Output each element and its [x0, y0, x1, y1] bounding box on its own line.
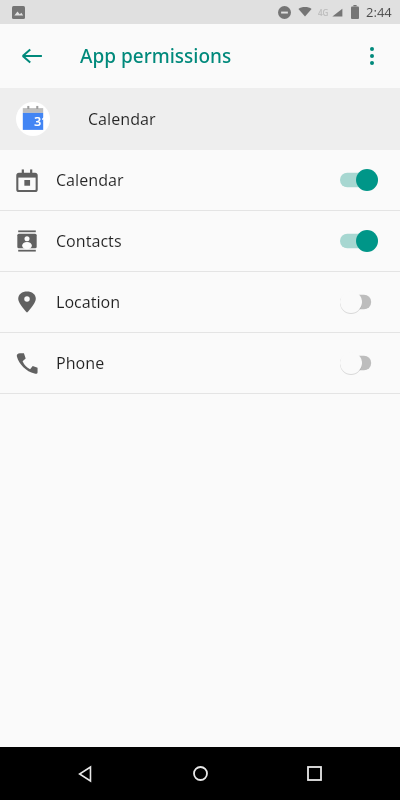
staticText: 4G [318, 7, 329, 18]
button[interactable]: Location permission toggle [336, 284, 384, 320]
button[interactable]: Contacts [0, 211, 400, 271]
button[interactable]: 31 [0, 88, 400, 150]
button[interactable]: Home [172, 747, 228, 800]
staticText: Location [56, 291, 336, 313]
staticText: Phone [56, 352, 336, 374]
staticText: Contacts [56, 230, 336, 252]
staticText: Calendar [88, 108, 156, 130]
button[interactable]: Phone permission toggle [336, 345, 384, 381]
button[interactable]: Recent apps [286, 747, 342, 800]
staticText: 31 [34, 113, 48, 129]
button[interactable]: More options [348, 32, 396, 80]
button[interactable]: Back [58, 747, 114, 800]
button[interactable]: Calendar [0, 150, 400, 210]
staticText: 2:44 [366, 3, 392, 21]
button[interactable]: Calendar permission toggle [336, 162, 384, 198]
staticText: Calendar [56, 169, 336, 191]
button[interactable]: Phone [0, 333, 400, 393]
button[interactable]: Navigate up [8, 32, 56, 80]
staticText: App permissions [80, 43, 232, 69]
button[interactable]: Location [0, 272, 400, 332]
button[interactable]: Contacts permission toggle [336, 223, 384, 259]
